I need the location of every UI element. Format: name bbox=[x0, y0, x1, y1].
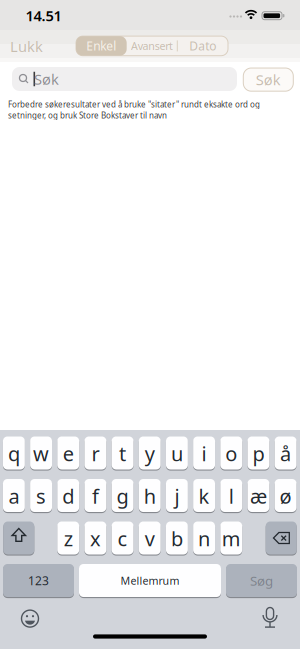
staticText: s bbox=[36, 483, 46, 509]
button[interactable]: b bbox=[166, 520, 188, 555]
button[interactable]: r bbox=[84, 435, 106, 470]
staticText: b bbox=[171, 525, 183, 552]
staticText: Dato bbox=[189, 38, 216, 54]
staticText: y bbox=[145, 440, 155, 467]
button[interactable]: æ bbox=[247, 478, 269, 513]
button[interactable]: k bbox=[193, 478, 215, 513]
button[interactable]: 123 bbox=[3, 563, 74, 598]
button[interactable]: p bbox=[247, 435, 269, 470]
staticText: n bbox=[198, 525, 210, 552]
staticText: t bbox=[119, 440, 126, 467]
staticText: f bbox=[92, 483, 99, 509]
button[interactable]: t bbox=[112, 435, 133, 470]
button[interactable]: u bbox=[166, 435, 188, 470]
staticText: Avansert bbox=[131, 39, 173, 53]
button[interactable]: Lukk bbox=[10, 37, 43, 56]
staticText: å bbox=[280, 440, 291, 467]
staticText: z bbox=[64, 525, 73, 552]
staticText: 14.51 bbox=[25, 6, 61, 25]
button[interactable]: y bbox=[139, 435, 161, 470]
staticText: v bbox=[145, 525, 155, 552]
staticText: i bbox=[202, 440, 207, 467]
staticText: 123 bbox=[28, 572, 49, 588]
staticText: d bbox=[62, 483, 74, 509]
button[interactable]: a bbox=[3, 478, 25, 513]
button[interactable]: Søg bbox=[226, 563, 297, 598]
staticText: q bbox=[8, 440, 20, 467]
button[interactable]: Enkel bbox=[76, 36, 126, 56]
staticText: Søg bbox=[250, 572, 273, 589]
button[interactable]: s bbox=[30, 478, 52, 513]
button[interactable]: o bbox=[220, 435, 242, 470]
staticText: Lukk bbox=[10, 37, 43, 56]
staticText: Søk bbox=[256, 70, 281, 89]
staticText: Enkel bbox=[86, 38, 116, 54]
staticText: h bbox=[144, 483, 156, 509]
button[interactable]: Emoji bbox=[20, 609, 40, 629]
button[interactable]: j bbox=[166, 478, 188, 513]
button[interactable]: Avansert bbox=[127, 36, 177, 56]
button[interactable]: Dictation bbox=[262, 606, 278, 628]
button[interactable]: Mellemrum bbox=[79, 563, 221, 598]
staticText: Forbedre søkeresultater ved å bruke "sit… bbox=[8, 99, 260, 110]
button[interactable]: g bbox=[112, 478, 133, 513]
staticText: x bbox=[90, 525, 101, 552]
staticText: Søk bbox=[34, 69, 59, 89]
button[interactable]: c bbox=[112, 520, 133, 555]
button[interactable]: w bbox=[30, 435, 52, 470]
button[interactable]: Søk bbox=[243, 68, 293, 91]
button[interactable]: Shift bbox=[3, 520, 34, 555]
staticText: Mellemrum bbox=[120, 573, 179, 588]
staticText: p bbox=[252, 440, 264, 467]
button[interactable]: d bbox=[57, 478, 79, 513]
staticText: m bbox=[222, 525, 241, 552]
staticText: k bbox=[199, 483, 210, 509]
button[interactable]: x bbox=[84, 520, 106, 555]
button[interactable]: e bbox=[57, 435, 79, 470]
button[interactable]: q bbox=[3, 435, 25, 470]
button[interactable]: Delete bbox=[266, 520, 297, 555]
button[interactable]: v bbox=[139, 520, 161, 555]
staticText: setninger, og bruk Store Bokstaver til n… bbox=[8, 110, 167, 121]
button[interactable]: n bbox=[193, 520, 215, 555]
button[interactable]: Søk bbox=[12, 67, 237, 91]
staticText: l bbox=[229, 483, 234, 509]
button[interactable]: ø bbox=[275, 478, 297, 513]
button[interactable]: h bbox=[139, 478, 161, 513]
staticText: ø bbox=[280, 483, 292, 509]
staticText: w bbox=[33, 440, 49, 467]
staticText: g bbox=[117, 483, 129, 509]
staticText: o bbox=[225, 440, 237, 467]
staticText: e bbox=[63, 440, 74, 467]
staticText: æ bbox=[250, 483, 267, 509]
button[interactable]: f bbox=[84, 478, 106, 513]
staticText: a bbox=[8, 483, 19, 509]
staticText: u bbox=[171, 440, 183, 467]
staticText: j bbox=[174, 483, 179, 509]
button[interactable]: Dato bbox=[178, 36, 228, 56]
staticText: c bbox=[118, 525, 128, 552]
button[interactable]: z bbox=[57, 520, 79, 555]
button[interactable]: å bbox=[275, 435, 297, 470]
button[interactable]: l bbox=[220, 478, 242, 513]
button[interactable]: i bbox=[193, 435, 215, 470]
button[interactable]: m bbox=[220, 520, 242, 555]
staticText: r bbox=[91, 440, 99, 467]
